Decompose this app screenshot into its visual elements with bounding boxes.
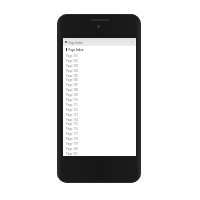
button[interactable]: Page 108 <box>63 87 136 92</box>
button[interactable]: Page 105 <box>63 73 136 78</box>
button[interactable]: Page 115 <box>63 121 136 126</box>
staticText: Page 113 <box>66 113 78 117</box>
button[interactable]: Page 118 <box>63 136 136 141</box>
button[interactable]: Page 110 <box>63 97 136 102</box>
staticText: Page 105 <box>66 74 78 78</box>
button[interactable]: Page 111 <box>63 102 136 107</box>
button[interactable]: Page 103 <box>63 63 136 68</box>
button[interactable]: Close tab <box>131 41 134 44</box>
button[interactable]: Page 102 <box>63 58 136 63</box>
staticText: Page 104 <box>66 69 78 73</box>
button[interactable]: Page Index <box>63 46 136 53</box>
staticText: Page 115 <box>66 122 78 126</box>
button[interactable]: Page Index <box>63 38 136 46</box>
button[interactable]: Page 101 <box>63 53 136 58</box>
staticText: Page 107 <box>66 83 78 87</box>
button[interactable]: Page 107 <box>63 82 136 87</box>
button[interactable]: Page 120 <box>63 146 136 151</box>
staticText: Page 111 <box>66 103 78 107</box>
staticText: Page 106 <box>66 78 78 82</box>
staticText: Page 102 <box>66 59 78 63</box>
button[interactable]: Page 119 <box>63 141 136 146</box>
staticText: Page 117 <box>66 132 78 136</box>
button[interactable]: Page 109 <box>63 92 136 97</box>
staticText: Page 103 <box>66 64 78 68</box>
staticText: Page 119 <box>66 142 78 146</box>
button[interactable]: Page 116 <box>63 126 136 131</box>
button[interactable]: Page 106 <box>63 77 136 82</box>
staticText: Page 120 <box>66 147 78 151</box>
staticText: Page Index <box>68 41 83 45</box>
staticText: Page 110 <box>66 98 78 102</box>
staticText: Page 114 <box>66 118 78 122</box>
staticText: Page 101 <box>66 54 78 58</box>
button[interactable]: Page 117 <box>63 131 136 136</box>
staticText: Page 116 <box>66 127 78 131</box>
button[interactable]: Page 113 <box>63 112 136 117</box>
staticText: Page 121 <box>66 152 78 156</box>
button[interactable]: Page 114 <box>63 117 136 122</box>
button[interactable]: Page 112 <box>63 107 136 112</box>
button[interactable]: Page 121 <box>63 151 136 156</box>
staticText: Page 108 <box>66 88 78 92</box>
button[interactable]: Page 104 <box>63 68 136 73</box>
staticText: Page Index <box>68 48 83 52</box>
staticText: Page 118 <box>66 137 78 141</box>
staticText: Page 112 <box>66 108 78 112</box>
staticText: Page 109 <box>66 93 78 97</box>
